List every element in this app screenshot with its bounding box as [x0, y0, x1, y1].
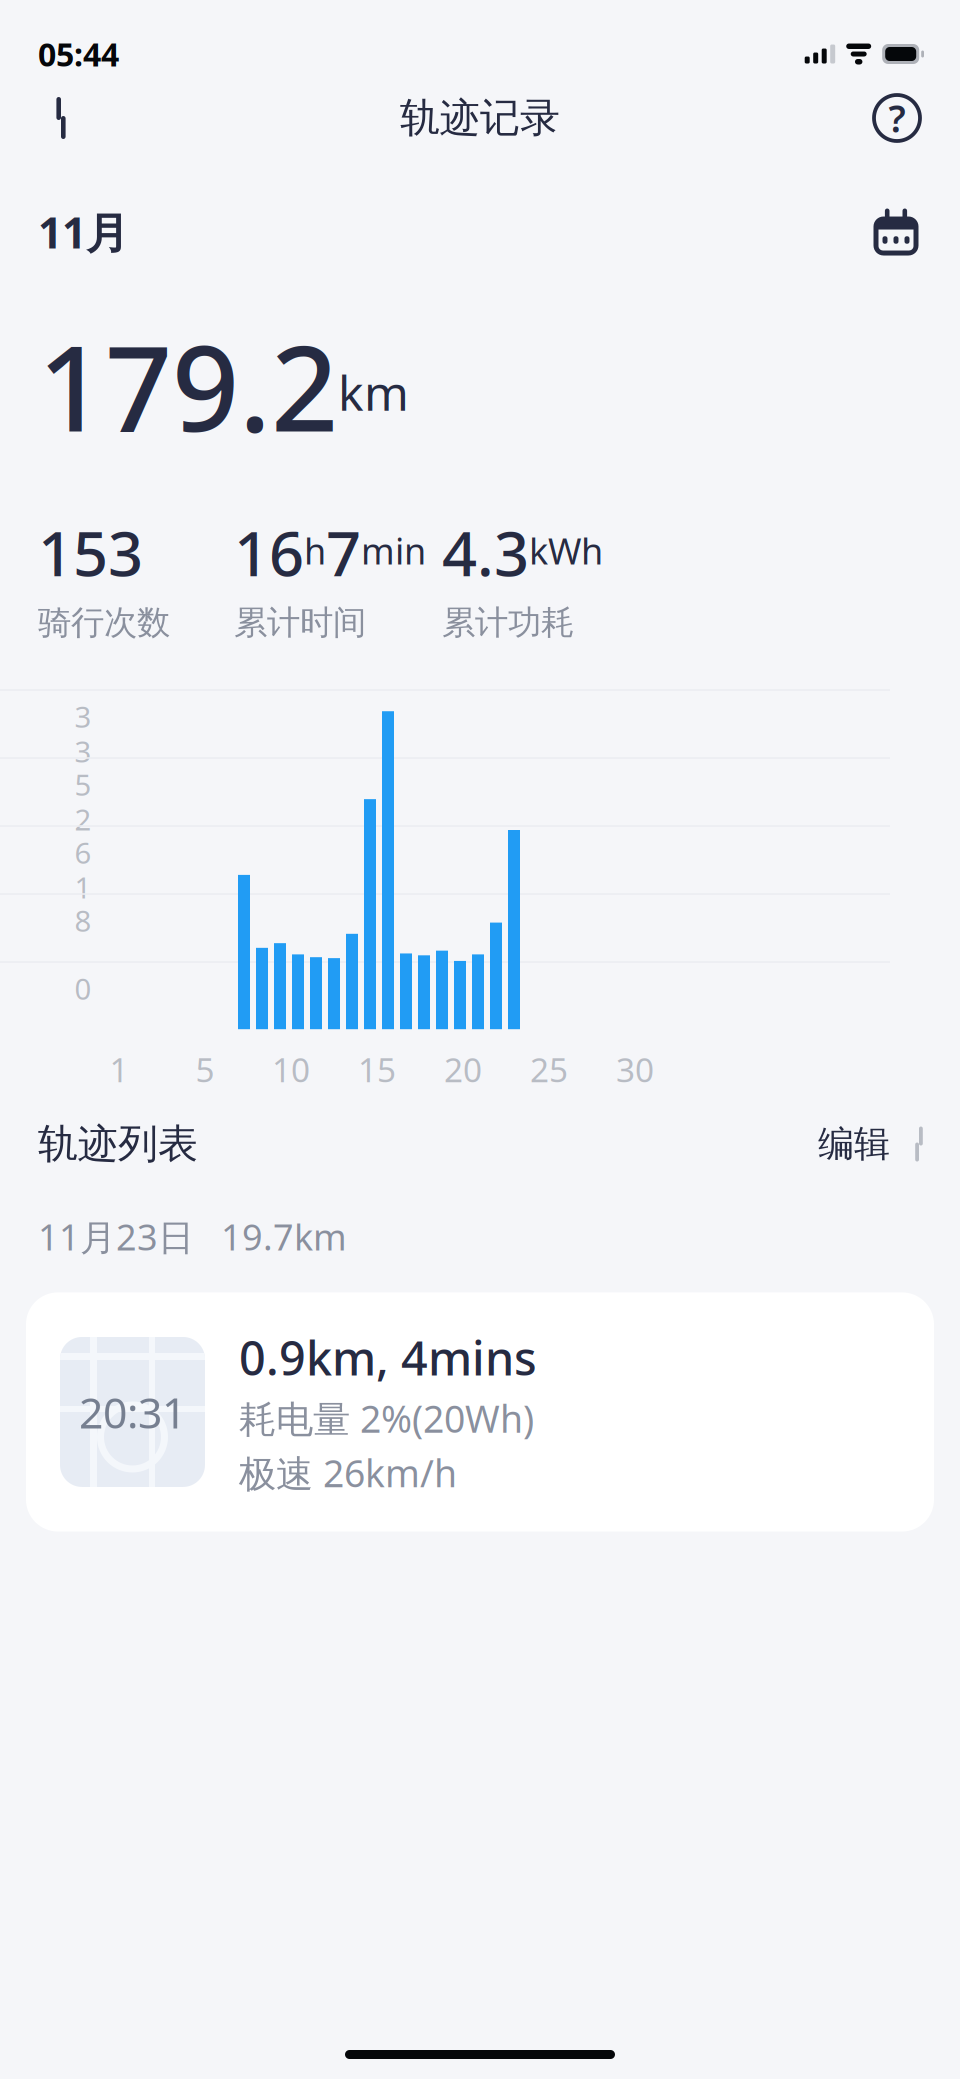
staticText: h	[304, 527, 326, 574]
staticText: 4.3	[442, 512, 529, 593]
staticText: 20:31	[79, 1384, 186, 1440]
staticText: 0	[74, 969, 91, 1008]
staticText: 7	[326, 512, 361, 593]
staticText: 8	[74, 901, 91, 940]
staticText: 5	[74, 765, 91, 804]
staticText: 179.2	[38, 308, 338, 464]
staticText: 0.9km, 4mins	[239, 1326, 537, 1388]
staticText: 1	[74, 868, 91, 907]
staticText: kWh	[529, 527, 603, 574]
staticText: 编辑	[818, 1122, 890, 1166]
staticText: 2	[74, 800, 91, 839]
staticText: 15	[358, 1047, 396, 1091]
staticText: 骑行次数	[38, 602, 170, 643]
staticText: 1	[109, 1047, 128, 1091]
staticText: 累计功耗	[442, 602, 574, 643]
staticText: 153	[38, 512, 143, 593]
staticText: 3	[74, 732, 91, 771]
staticText: 轨迹列表	[38, 1119, 198, 1169]
staticText: 耗电量 2%(20Wh)	[239, 1393, 534, 1443]
staticText: 5	[195, 1047, 214, 1091]
staticText: 11月23日 19.7km	[38, 1213, 347, 1260]
staticText: 10	[272, 1047, 310, 1091]
button[interactable]: 20:31	[26, 1292, 934, 1531]
button[interactable]: 帮助	[864, 85, 930, 151]
staticText: 30	[616, 1047, 654, 1091]
staticText: 25	[530, 1047, 568, 1091]
staticText: km	[338, 360, 409, 424]
staticText: 20	[444, 1047, 482, 1091]
staticText: 05:44	[38, 33, 119, 75]
staticText: min	[361, 527, 426, 574]
button[interactable]: 轨迹列表	[0, 1091, 960, 1185]
staticText: 16	[234, 512, 304, 593]
button[interactable]: 选择月份	[866, 202, 926, 262]
staticText: 6	[74, 833, 91, 872]
staticText: 11月	[38, 204, 129, 260]
staticText: 极速 26km/h	[239, 1448, 457, 1498]
staticText: 累计时间	[234, 602, 366, 643]
staticText: ?	[888, 93, 905, 143]
staticText: 轨迹记录	[400, 93, 560, 142]
button[interactable]: 返回	[28, 85, 94, 151]
staticText: 3	[74, 697, 91, 736]
